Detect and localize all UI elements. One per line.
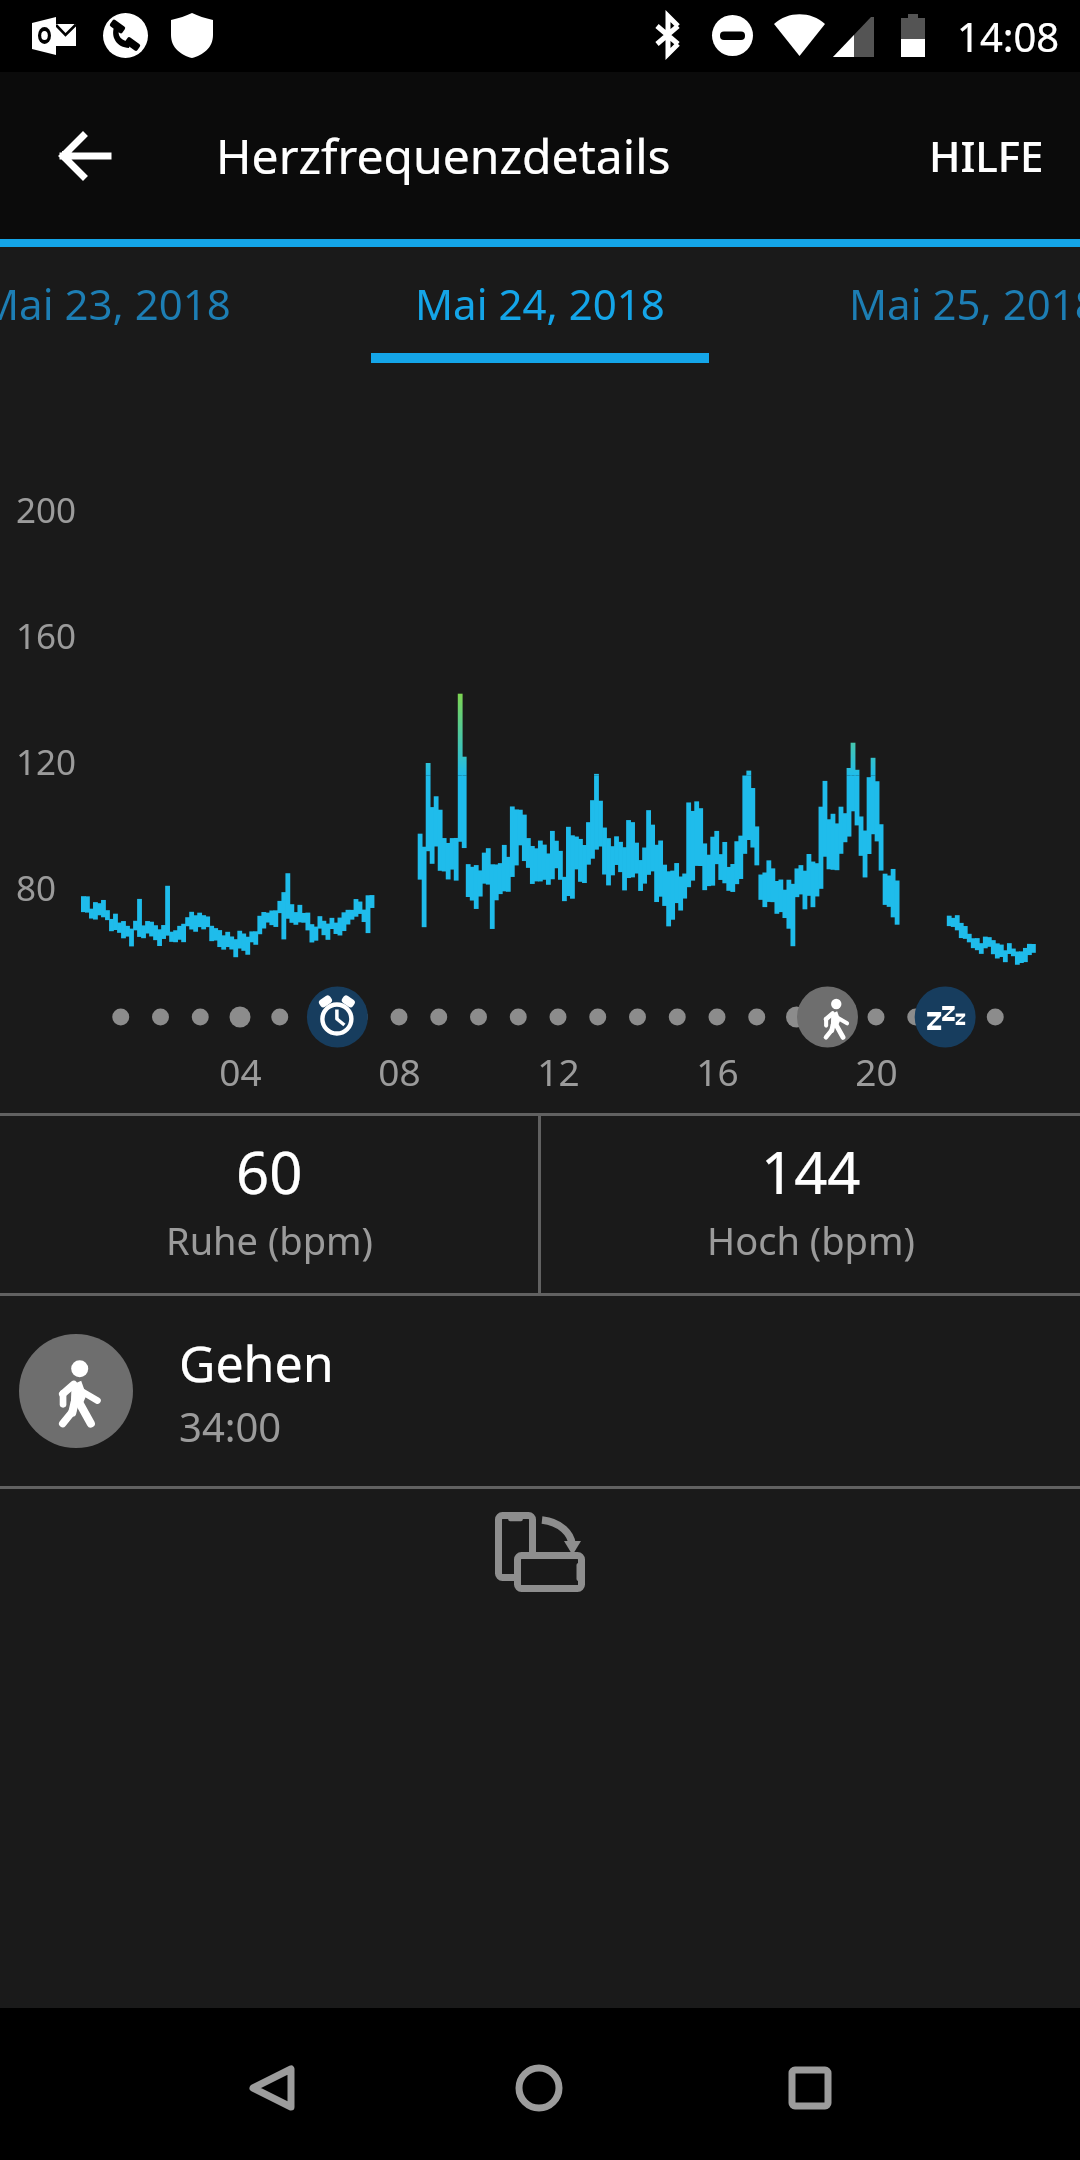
staticText: 12 xyxy=(537,1046,580,1096)
staticText: 80 xyxy=(16,864,57,912)
staticText: 144 xyxy=(761,1132,861,1211)
staticText: 20 xyxy=(855,1046,898,1096)
button[interactable]: HILFE xyxy=(893,95,1080,216)
staticText: Mai 25, 2018 xyxy=(849,275,1080,332)
staticText: 14:08 xyxy=(957,9,1060,63)
staticText: 120 xyxy=(16,738,77,786)
button[interactable]: Home xyxy=(459,2012,619,2160)
staticText: 200 xyxy=(16,486,77,534)
staticText: 60 xyxy=(236,1132,303,1211)
staticText: Mai 24, 2018 xyxy=(415,275,665,332)
staticText: HILFE xyxy=(929,127,1044,184)
staticText: Herzfrequenzdetails xyxy=(216,123,671,188)
staticText: Mai 23, 2018 xyxy=(0,275,231,332)
button[interactable]: Mai 23, 2018 xyxy=(0,247,323,353)
button[interactable]: Back xyxy=(192,2012,352,2160)
button[interactable]: Recent apps xyxy=(730,2012,890,2160)
staticText: 08 xyxy=(378,1046,421,1096)
button[interactable]: Mai 25, 2018 xyxy=(757,247,1080,353)
button[interactable]: Back xyxy=(36,108,132,204)
staticText: Hoch (bpm) xyxy=(707,1214,915,1266)
button[interactable]: 60 xyxy=(0,1116,538,1293)
staticText: 34:00 xyxy=(179,1399,282,1453)
staticText: 04 xyxy=(219,1046,262,1096)
button[interactable]: 144 xyxy=(541,1116,1080,1293)
staticText: Ruhe (bpm) xyxy=(166,1214,373,1266)
button[interactable]: Mai 24, 2018 xyxy=(323,247,757,353)
staticText: Gehen xyxy=(179,1329,334,1397)
staticText: 160 xyxy=(16,612,77,660)
button[interactable]: Gehen xyxy=(0,1296,1080,1486)
staticText: 16 xyxy=(696,1046,739,1096)
